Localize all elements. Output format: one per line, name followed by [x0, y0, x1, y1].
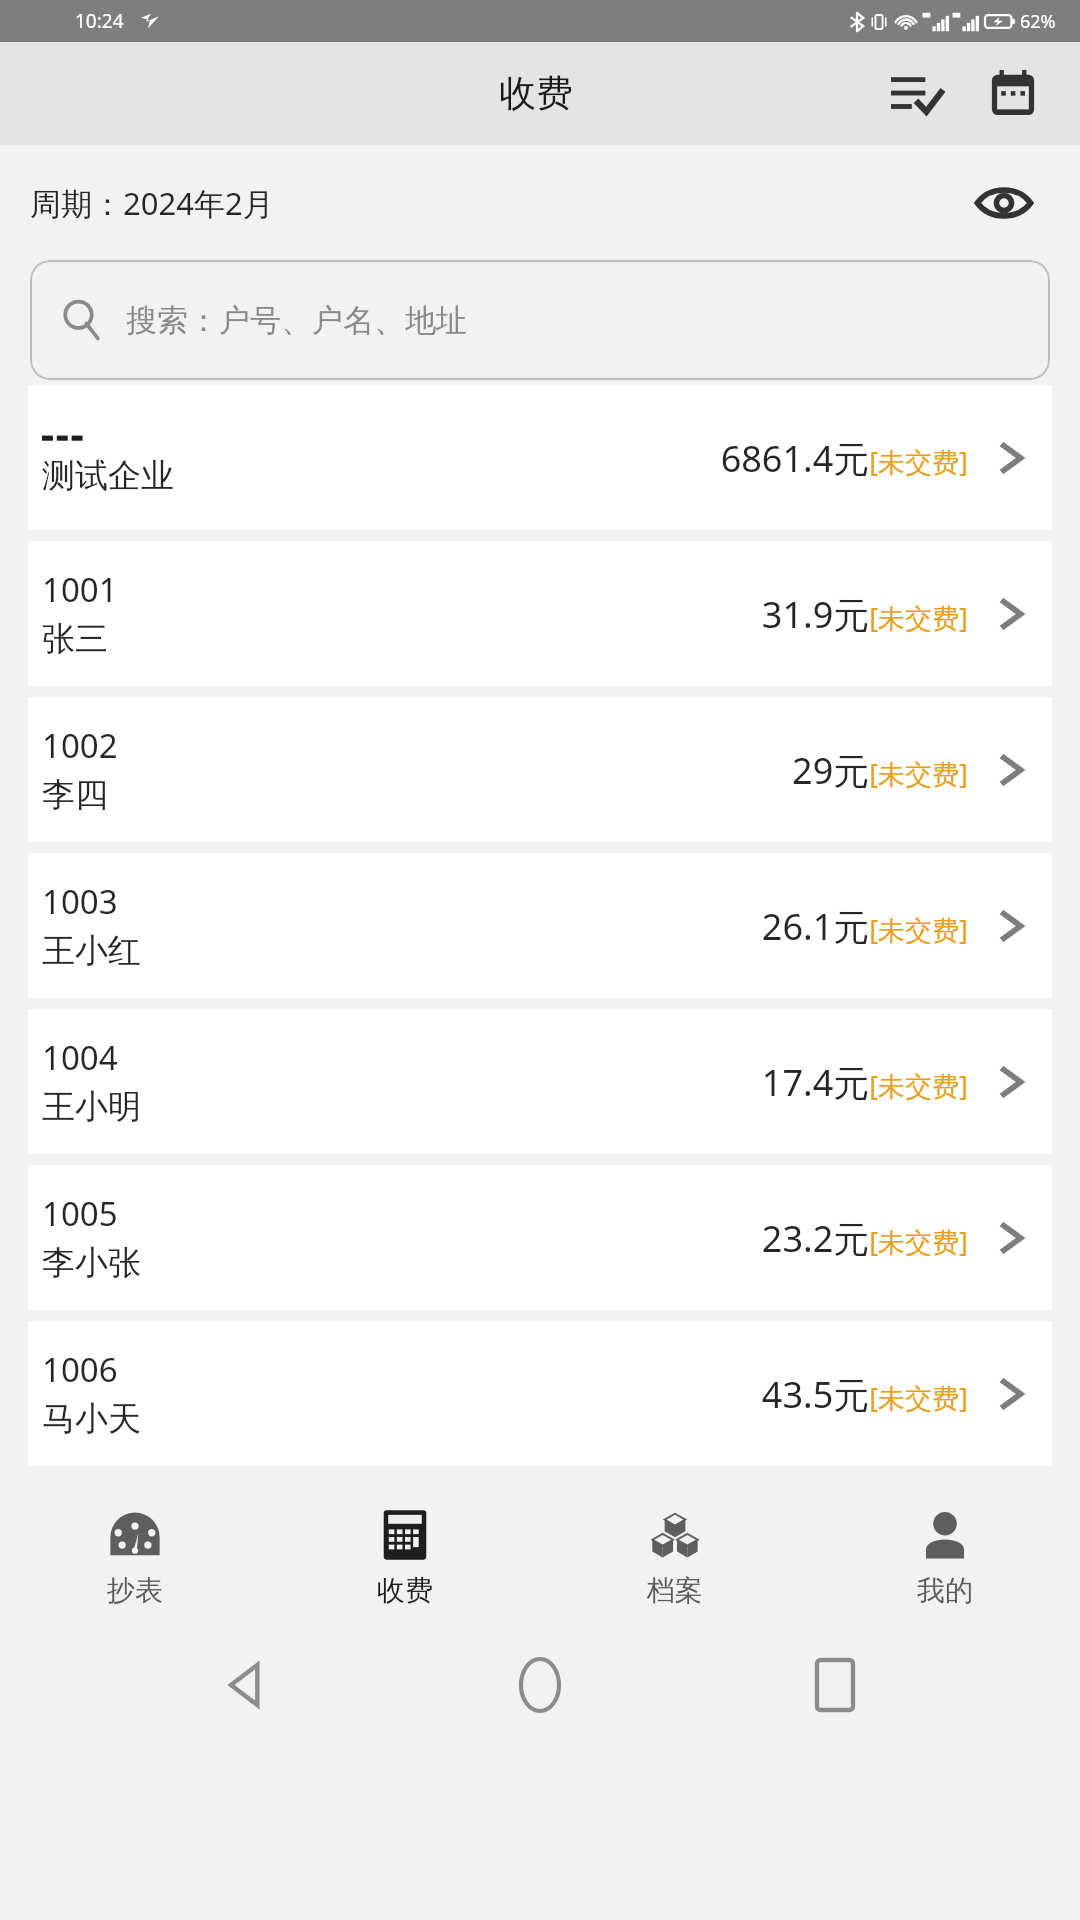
staticText: 王小明	[42, 1086, 141, 1128]
staticText: 62%	[1020, 9, 1056, 34]
staticText: 我的	[917, 1573, 973, 1608]
staticText: 搜索：户号、户名、地址	[126, 301, 467, 340]
button[interactable]: 1001	[28, 541, 1052, 686]
staticText: 1004	[42, 1035, 118, 1080]
button[interactable]: 选择周期	[970, 51, 1056, 137]
staticText: 档案	[647, 1573, 703, 1608]
staticText: 6861.4元[未交费]	[720, 434, 968, 483]
staticText: 收费	[377, 1573, 433, 1608]
button[interactable]: 1005	[28, 1165, 1052, 1310]
staticText: 收费	[499, 70, 573, 117]
staticText: 43.5元[未交费]	[761, 1370, 968, 1419]
button[interactable]: 1006	[28, 1321, 1052, 1466]
button[interactable]: 显示金额	[966, 165, 1042, 241]
staticText: 王小红	[42, 930, 141, 972]
staticText: 李四	[42, 774, 108, 816]
staticText: 测试企业	[42, 455, 174, 497]
staticText: 李小张	[42, 1242, 141, 1284]
button[interactable]: 收费	[270, 1501, 540, 1614]
staticText: 29元[未交费]	[792, 746, 968, 795]
staticText: 31.9元[未交费]	[761, 590, 968, 639]
staticText: 张三	[42, 618, 108, 660]
staticText: 1005	[42, 1191, 118, 1236]
button[interactable]: 周期：2024年2月	[30, 182, 274, 224]
button[interactable]: 返回	[195, 1635, 295, 1735]
staticText: 1002	[42, 723, 118, 768]
staticText: 1001	[42, 567, 118, 612]
staticText: 周期：2024年2月	[30, 182, 274, 224]
button[interactable]: 测试企业	[28, 385, 1052, 530]
button[interactable]: 档案	[540, 1501, 810, 1614]
staticText: 10:24	[75, 8, 124, 34]
button[interactable]: 批量勾选	[874, 51, 960, 137]
button[interactable]: 1002	[28, 697, 1052, 842]
staticText: 1003	[42, 879, 118, 924]
button[interactable]: 最近任务	[785, 1635, 885, 1735]
button[interactable]: 1004	[28, 1009, 1052, 1154]
staticText: 17.4元[未交费]	[761, 1058, 968, 1107]
button[interactable]: 1003	[28, 853, 1052, 998]
button[interactable]: 我的	[810, 1501, 1080, 1614]
staticText: 抄表	[107, 1573, 163, 1608]
button[interactable]: 抄表	[0, 1501, 270, 1614]
button[interactable]: 搜索：户号、户名、地址	[30, 260, 1050, 380]
staticText: 23.2元[未交费]	[761, 1214, 968, 1263]
button[interactable]: 主屏幕	[490, 1635, 590, 1735]
staticText: 马小天	[42, 1398, 141, 1440]
staticText: 26.1元[未交费]	[761, 902, 968, 951]
staticText: 1006	[42, 1347, 118, 1392]
